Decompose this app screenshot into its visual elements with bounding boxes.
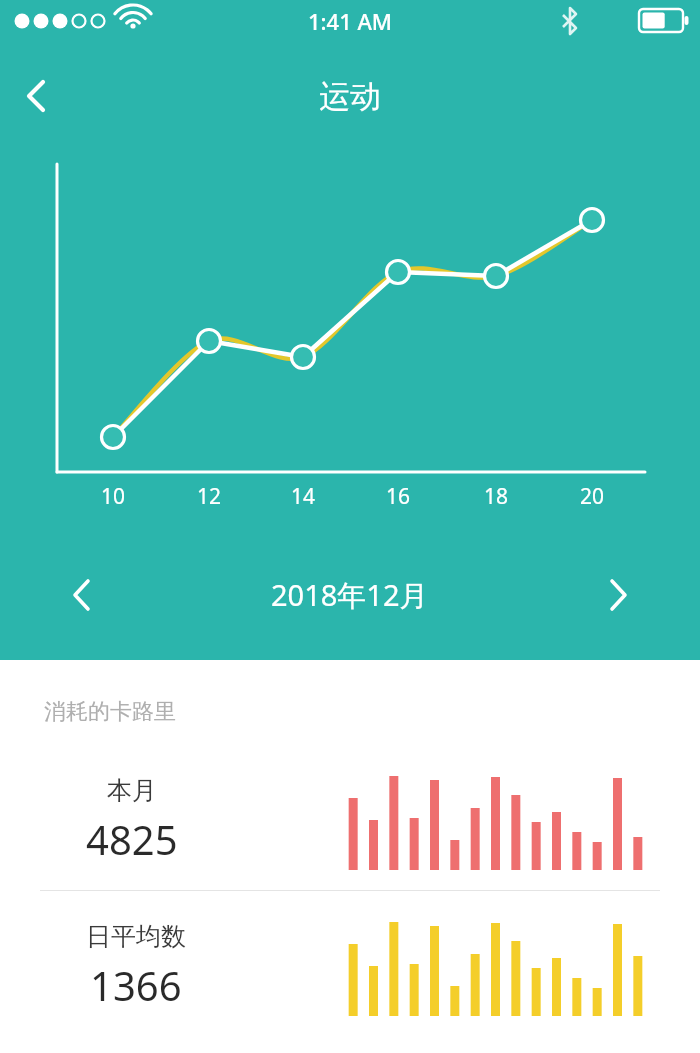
button[interactable]: Back [8,69,62,123]
staticText: 1366 [90,958,182,1012]
button[interactable]: 本月 [0,750,700,890]
staticText: 18 [478,482,514,511]
staticText: 16 [380,482,416,511]
button[interactable]: Previous month [54,567,110,623]
button[interactable]: 日平均数 [0,891,700,1041]
staticText: 12 [191,482,227,511]
staticText: 1:41 AM [308,6,393,36]
staticText: 本月 [107,775,157,806]
staticText: 10 [95,482,131,511]
button[interactable]: 2018年12月 [251,567,449,623]
staticText: 运动 [319,77,381,116]
staticText: 日平均数 [86,921,186,952]
staticText: 消耗的卡路里 [44,698,176,726]
staticText: 2018年12月 [271,575,429,615]
staticText: 14 [285,482,321,511]
button[interactable]: Next month [590,567,646,623]
staticText: 4825 [86,812,178,866]
staticText: 20 [574,482,610,511]
